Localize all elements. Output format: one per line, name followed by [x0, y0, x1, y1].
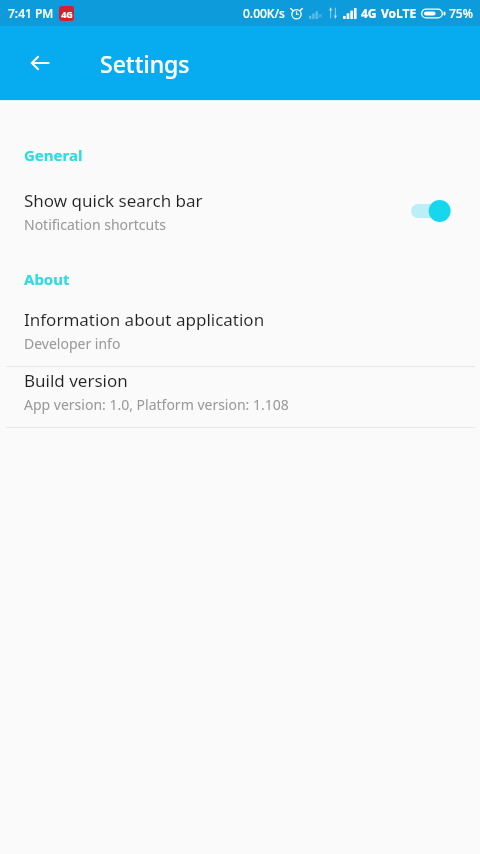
button[interactable]: Show quick search bar — [0, 182, 480, 240]
staticText: 4G — [61, 8, 73, 20]
staticText: VoLTE — [381, 5, 417, 21]
staticText: Show quick search bar — [24, 189, 203, 212]
staticText: General — [24, 145, 83, 165]
staticText: About — [24, 269, 70, 289]
staticText: 75% — [449, 5, 473, 21]
button[interactable]: Build version — [0, 367, 480, 416]
button[interactable]: Back — [18, 41, 62, 85]
staticText: Information about application — [24, 308, 265, 331]
staticText: Build version — [24, 369, 128, 392]
staticText: 4G — [361, 5, 377, 21]
staticText: 0.00K/s — [243, 5, 285, 21]
staticText: Notification shortcuts — [24, 215, 167, 234]
staticText: App version: 1.0, Platform version: 1.10… — [24, 395, 289, 414]
button[interactable]: Show quick search bar toggle — [404, 194, 456, 228]
staticText: Settings — [100, 48, 190, 79]
staticText: 7:41 PM — [8, 5, 54, 21]
staticText: Developer info — [24, 334, 121, 353]
button[interactable]: Information about application — [0, 306, 480, 355]
